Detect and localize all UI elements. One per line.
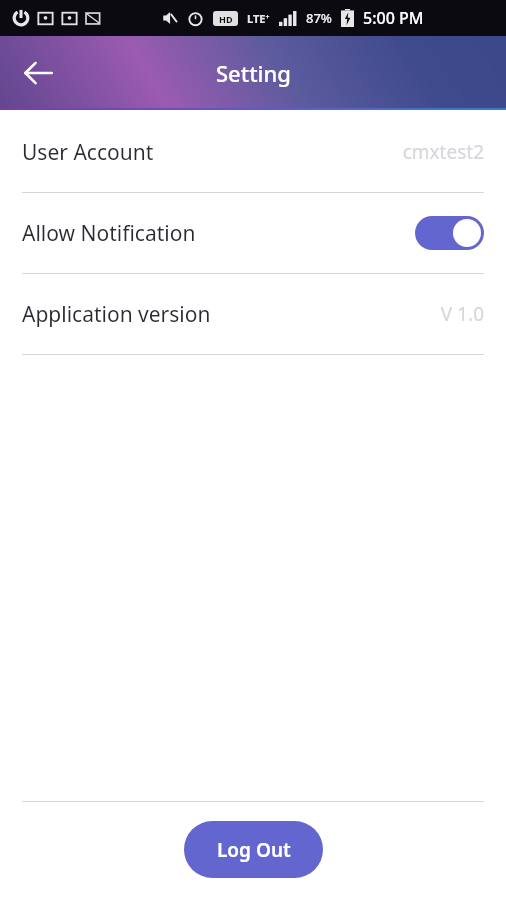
staticText: Allow Notification xyxy=(22,219,196,248)
staticText: LTE⁺ xyxy=(247,11,270,26)
staticText: 87% xyxy=(306,9,332,27)
staticText: 5:00 PM xyxy=(363,7,424,29)
staticText: HD xyxy=(219,13,233,25)
staticText: Log Out xyxy=(217,837,291,863)
staticText: User Account xyxy=(22,138,154,167)
staticText: Application version xyxy=(22,300,211,329)
button[interactable]: Back xyxy=(12,47,64,99)
staticText: Setting xyxy=(216,58,291,88)
staticText: V 1.0 xyxy=(440,301,484,327)
staticText: cmxtest2 xyxy=(402,139,484,165)
button[interactable]: User Account xyxy=(0,112,506,192)
button[interactable]: Log Out xyxy=(184,821,323,878)
button[interactable]: Application version xyxy=(0,274,506,354)
button[interactable]: Allow Notification xyxy=(0,193,506,273)
